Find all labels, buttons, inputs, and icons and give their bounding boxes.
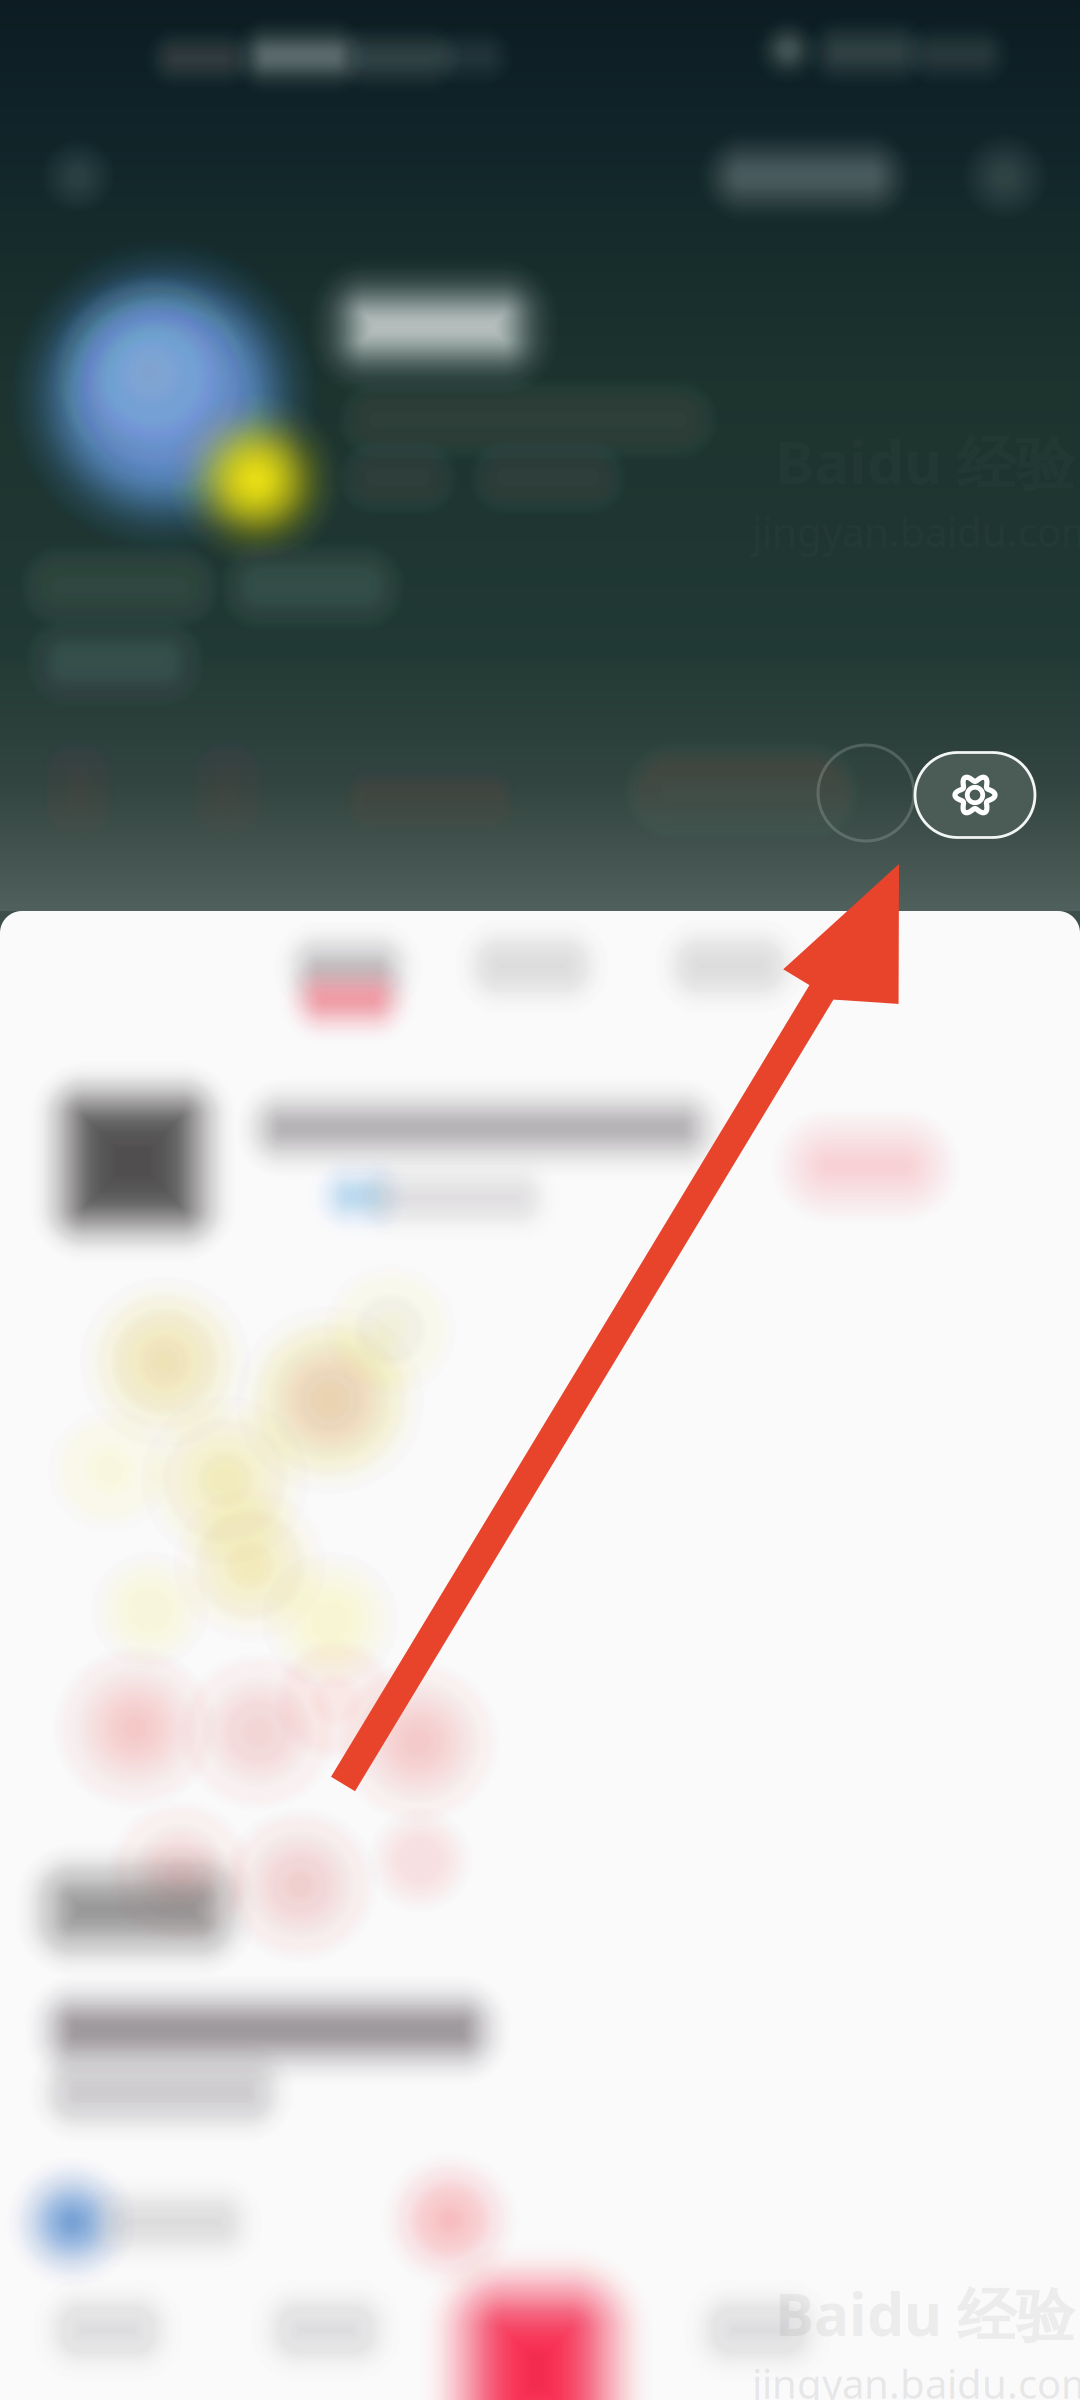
button[interactable]: Settings: [915, 752, 1035, 837]
staticText: jingyan.baidu.com: [752, 2356, 1080, 2400]
staticText: Baidu 经验: [775, 2274, 1075, 2352]
